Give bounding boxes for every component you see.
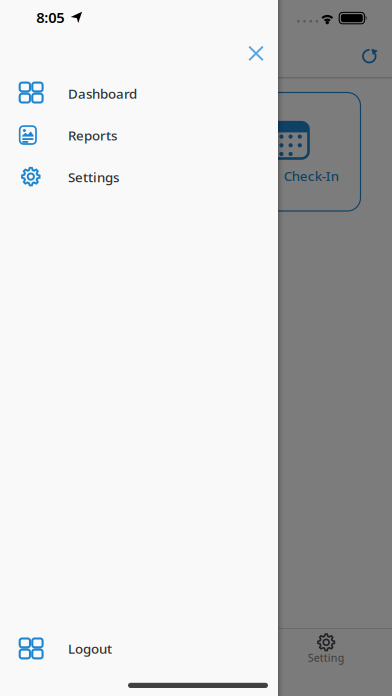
staticText: Home bbox=[50, 651, 80, 665]
button[interactable]: Dashboard bbox=[4, 72, 268, 114]
button[interactable]: Home bbox=[15, 629, 115, 696]
button[interactable]: Check-In bbox=[31, 91, 361, 212]
button[interactable]: Close menu bbox=[239, 36, 273, 70]
button[interactable]: Settings bbox=[4, 156, 268, 198]
button[interactable]: Setting bbox=[276, 629, 376, 696]
button[interactable]: Refresh bbox=[349, 36, 389, 76]
staticText: 8:05 bbox=[36, 7, 64, 27]
staticText: Dashboard bbox=[68, 85, 137, 102]
button[interactable]: Logout bbox=[4, 628, 268, 670]
staticText: Check-In bbox=[284, 167, 339, 185]
staticText: Setting bbox=[308, 651, 345, 665]
staticText: Settings bbox=[68, 168, 119, 186]
staticText: Logout bbox=[68, 640, 112, 657]
button[interactable]: Report bbox=[146, 629, 246, 696]
button[interactable]: Reports bbox=[4, 114, 268, 156]
staticText: Reports bbox=[68, 126, 117, 144]
